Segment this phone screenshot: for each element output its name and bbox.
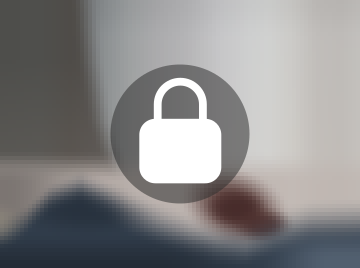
button[interactable]: Locked bbox=[0, 0, 360, 268]
